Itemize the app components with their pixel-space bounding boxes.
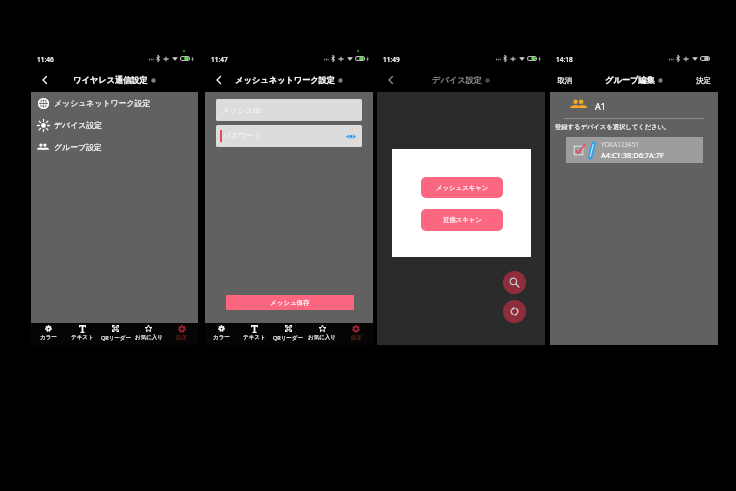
- staticText: A1: [595, 100, 606, 112]
- button[interactable]: Back: [381, 71, 399, 89]
- button[interactable]: QRリーダー: [99, 323, 132, 345]
- button[interactable]: テキスト: [65, 323, 99, 345]
- button[interactable]: 決定: [696, 76, 711, 85]
- staticText: カラー: [40, 334, 57, 341]
- button[interactable]: 取消: [557, 76, 572, 85]
- staticText: 11:47: [211, 55, 228, 64]
- staticText: メッシュID: [222, 105, 262, 115]
- button[interactable]: 設定: [165, 323, 198, 345]
- staticText: デバイス設定: [54, 120, 103, 130]
- button[interactable]: メッシュID: [216, 99, 362, 121]
- staticText: テキスト: [71, 334, 94, 341]
- staticText: QRリーダー: [273, 334, 303, 342]
- staticText: 14:18: [556, 55, 573, 64]
- button[interactable]: 設定: [339, 323, 373, 345]
- button[interactable]: カラー: [205, 323, 238, 345]
- button[interactable]: YOKA123451: [566, 137, 703, 163]
- staticText: パスワード: [223, 131, 262, 141]
- staticText: 近接スキャン: [443, 216, 482, 224]
- button[interactable]: Search: [503, 271, 526, 294]
- staticText: 設定: [176, 334, 187, 341]
- staticText: デバイス設定: [432, 75, 482, 85]
- button[interactable]: デバイス設定: [31, 114, 198, 136]
- button[interactable]: Refresh: [503, 300, 526, 323]
- staticText: A4:C1:38:D6:7A:7F: [601, 150, 664, 160]
- staticText: グループ編集: [605, 75, 655, 85]
- button[interactable]: パスワード: [216, 125, 362, 147]
- staticText: 11:46: [37, 55, 54, 64]
- staticText: 設定: [351, 334, 362, 341]
- staticText: 決定: [696, 76, 711, 85]
- staticText: カラー: [213, 334, 230, 341]
- staticText: 取消: [557, 76, 572, 85]
- staticText: ワイヤレス通信設定: [73, 75, 148, 85]
- staticText: お気に入り: [308, 334, 336, 341]
- button[interactable]: Back: [209, 71, 227, 89]
- button[interactable]: メッシュ保存: [226, 295, 354, 310]
- staticText: グループ設定: [54, 142, 102, 152]
- button[interactable]: Back: [35, 71, 53, 89]
- button[interactable]: 近接スキャン: [421, 209, 503, 231]
- button[interactable]: メッシュネットワーク設定: [31, 92, 198, 114]
- button[interactable]: お気に入り: [132, 323, 165, 345]
- staticText: メッシュスキャン: [436, 184, 489, 192]
- button[interactable]: テキスト: [238, 323, 271, 345]
- staticText: テキスト: [243, 334, 266, 341]
- staticText: 11:49: [383, 55, 400, 64]
- staticText: メッシュネットワーク設定: [235, 75, 335, 85]
- button[interactable]: QRリーダー: [271, 323, 305, 345]
- staticText: QRリーダー: [101, 334, 131, 342]
- button[interactable]: メッシュスキャン: [421, 177, 503, 198]
- button[interactable]: グループ設定: [31, 136, 198, 158]
- staticText: YOKA123451: [601, 140, 639, 149]
- staticText: お気に入り: [135, 334, 163, 341]
- staticText: メッシュネットワーク設定: [54, 98, 151, 108]
- staticText: メッシュ保存: [270, 299, 310, 307]
- staticText: 登録するデバイスを選択してください。: [555, 123, 671, 131]
- button[interactable]: カラー: [31, 323, 65, 345]
- button[interactable]: お気に入り: [305, 323, 339, 345]
